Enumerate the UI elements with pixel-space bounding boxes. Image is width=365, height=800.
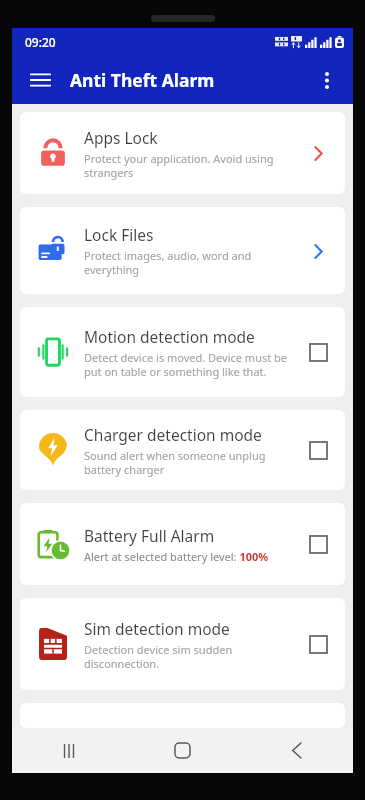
button[interactable]: Open navigation menu	[20, 60, 60, 100]
staticText: Protect images, audio, word and everythi…	[84, 248, 295, 277]
staticText: Detect device is moved. Device must be p…	[84, 350, 295, 379]
button[interactable]: Open	[303, 138, 333, 168]
staticText: Sound alert when someone unplug battery …	[84, 448, 295, 477]
staticText: Lock Files	[84, 224, 154, 245]
staticText: Protect your application. Avoid using st…	[84, 151, 295, 180]
button[interactable]: Sim detection mode	[20, 598, 345, 690]
button[interactable]: Battery Full Alarm	[20, 503, 345, 585]
staticText: Battery Full Alarm	[84, 525, 215, 546]
staticText: 09:20	[25, 34, 56, 50]
button[interactable]: Recents	[12, 728, 125, 773]
button[interactable]: Home	[125, 728, 239, 773]
button[interactable]: Back	[239, 728, 353, 773]
button[interactable]: Toggle mode	[303, 629, 333, 659]
staticText: Detection device sim sudden disconnectio…	[84, 642, 295, 671]
staticText: Alert at selected battery level: 100%	[84, 549, 269, 564]
button[interactable]: Lock Files	[20, 207, 345, 294]
staticText: Charger detection mode	[84, 424, 262, 445]
staticText: Apps Lock	[84, 127, 158, 148]
button[interactable]: Charger detection mode	[20, 410, 345, 490]
button[interactable]: More options	[307, 60, 347, 100]
button[interactable]: Apps Lock	[20, 112, 345, 194]
button[interactable]: Toggle mode	[303, 435, 333, 465]
staticText: Sim detection mode	[84, 618, 230, 639]
button[interactable]: Toggle mode	[303, 529, 333, 559]
staticText: Motion detection mode	[84, 326, 255, 347]
button[interactable]: Motion detection mode	[20, 307, 345, 397]
button[interactable]: Toggle mode	[303, 337, 333, 367]
button[interactable]: Open	[303, 236, 333, 266]
staticText: Anti Theft Alarm	[70, 68, 215, 92]
